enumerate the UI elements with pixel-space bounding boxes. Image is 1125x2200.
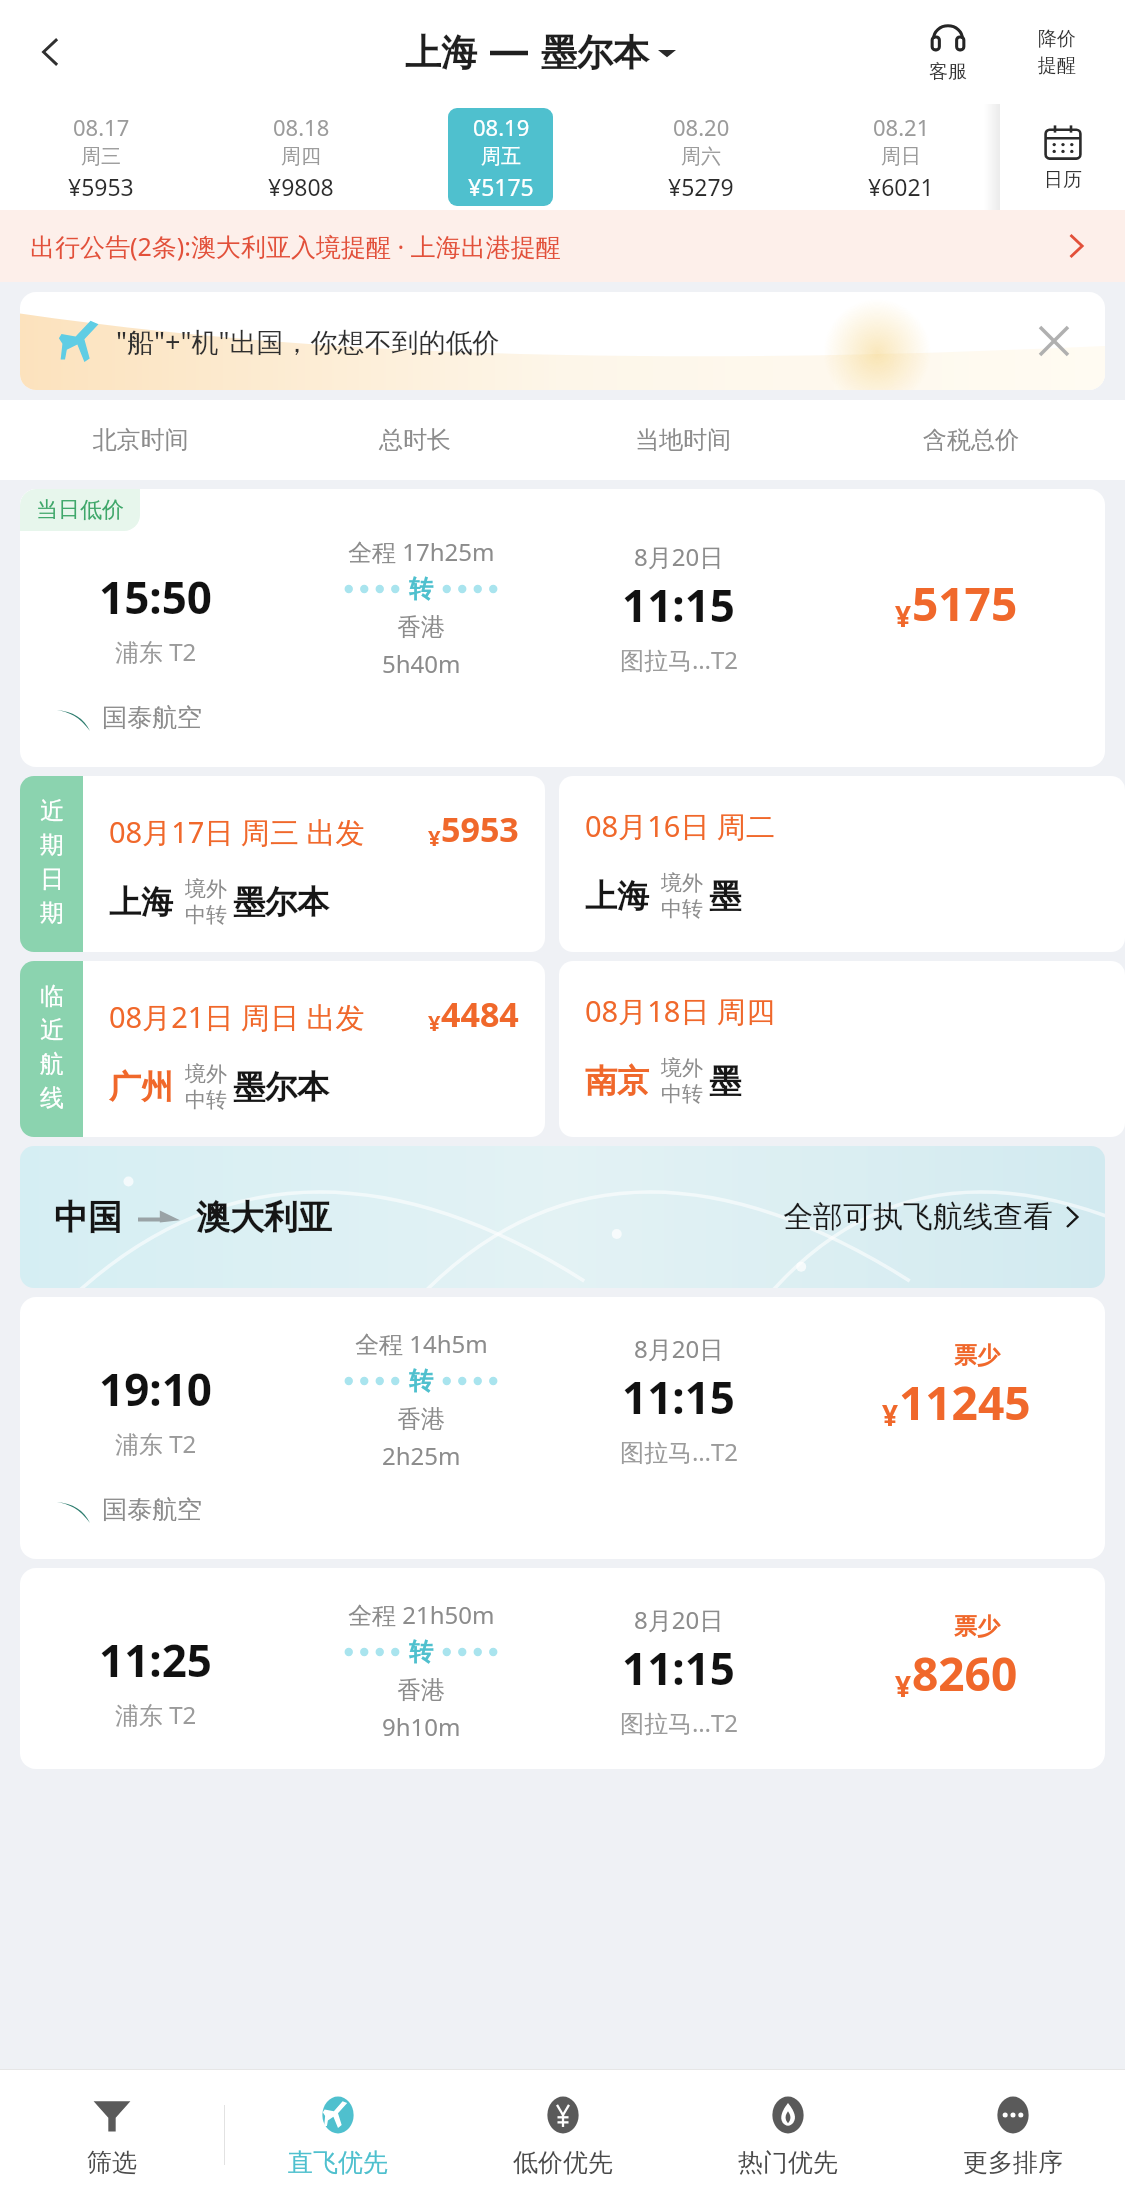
staticText: 墨尔本 (233, 1067, 329, 1107)
staticText: 2h25m (382, 1439, 461, 1472)
staticText: 08月16日 周二 (585, 806, 775, 846)
staticText: 浦东 T2 (115, 1698, 197, 1731)
button[interactable]: 降价 (1003, 27, 1111, 78)
button[interactable]: 08月18日 周四 (559, 961, 1125, 1137)
staticText: 5175 (912, 572, 1018, 635)
staticText: 筛选 (87, 2147, 137, 2178)
staticText: ¥ (895, 1667, 912, 1705)
staticText: 转 (409, 574, 433, 604)
staticText: 国泰航空 (102, 702, 202, 733)
button[interactable]: 11:25 (20, 1568, 1105, 1769)
staticText: 5953 (441, 806, 519, 852)
button[interactable]: 更多排序 (900, 2070, 1125, 2200)
button[interactable]: 临 (20, 961, 83, 1137)
staticText: 周三 (81, 144, 121, 169)
staticText: 周五 (481, 144, 521, 169)
staticText: ¥ (428, 822, 441, 852)
staticText: 广州 (109, 1067, 173, 1107)
staticText: 南京 (585, 1061, 649, 1101)
staticText: 直飞优先 (288, 2147, 388, 2178)
staticText: 转 (409, 1366, 433, 1396)
button[interactable]: 筛选 (0, 2070, 224, 2200)
staticText: 08.19 (473, 112, 530, 142)
button[interactable]: 低价优先 (450, 2070, 675, 2200)
staticText: 临 (40, 981, 64, 1011)
staticText: 中国 (54, 1196, 122, 1239)
staticText: 11245 (899, 1371, 1031, 1434)
staticText: ¥ (895, 597, 912, 635)
button[interactable]: 直飞优先 (225, 2070, 450, 2200)
staticText: 8月20日 (634, 540, 724, 573)
staticText: 日历 (1044, 168, 1082, 192)
button[interactable]: Back (20, 21, 82, 83)
staticText: 境外 (185, 1061, 227, 1087)
button[interactable]: 当日低价 (20, 489, 1105, 767)
staticText: 日 (40, 864, 64, 894)
staticText: 15:50 (99, 567, 213, 627)
button[interactable]: 08月17日 周三 出发 (83, 776, 545, 952)
staticText: ¥ (882, 1396, 899, 1434)
staticText: 08.18 (273, 112, 330, 142)
staticText: ¥5279 (668, 171, 734, 202)
staticText: 降价 (1038, 27, 1076, 51)
staticText: 近 (40, 796, 64, 826)
staticText: 墨 (709, 876, 741, 916)
staticText: 周六 (681, 144, 721, 169)
staticText: 上海 (109, 882, 173, 922)
staticText: 08月17日 周三 出发 (109, 812, 365, 852)
button[interactable]: 上海 (405, 30, 676, 75)
button[interactable]: 热门优先 (675, 2070, 900, 2200)
staticText: 墨尔本 (233, 882, 329, 922)
staticText: 含税总价 (817, 425, 1125, 455)
staticText: 全程 17h25m (348, 535, 495, 568)
staticText: 9h10m (382, 1710, 461, 1743)
button[interactable]: 中国 (20, 1146, 1105, 1288)
staticText: 08.21 (873, 112, 930, 142)
staticText: 香港 (397, 1675, 445, 1705)
staticText: 出行公告(2条):澳大利亚入境提醒 · 上海出港提醒 (30, 229, 561, 263)
staticText: 浦东 T2 (115, 635, 197, 668)
staticText: 低价优先 (513, 2147, 613, 2178)
staticText: 当地时间 (549, 425, 817, 455)
button[interactable]: 客服 (893, 20, 1003, 84)
staticText: 票少 (954, 1341, 1000, 1370)
staticText: 11:15 (622, 575, 736, 635)
button[interactable]: 08月16日 周二 (559, 776, 1125, 952)
button[interactable]: 出行公告(2条):澳大利亚入境提醒 · 上海出港提醒 (0, 210, 1125, 282)
button[interactable]: 08.18 (200, 104, 400, 210)
staticText: 浦东 T2 (115, 1427, 197, 1460)
button[interactable]: 近 (20, 776, 83, 952)
staticText: 近 (40, 1015, 64, 1045)
staticText: ¥ (428, 1007, 441, 1037)
staticText: ¥5175 (468, 171, 534, 202)
staticText: 08月18日 周四 (585, 991, 775, 1031)
button[interactable]: 关闭 (1029, 316, 1079, 366)
button[interactable]: 08.17 (0, 104, 200, 210)
staticText: 国泰航空 (102, 1494, 202, 1525)
staticText: 期 (40, 898, 64, 928)
staticText: 境外 (185, 876, 227, 902)
staticText: 香港 (397, 612, 445, 642)
button[interactable]: 08.19 (400, 104, 600, 210)
staticText: 转 (409, 1637, 433, 1667)
staticText: ¥5953 (68, 171, 134, 202)
staticText: 线 (40, 1083, 64, 1113)
staticText: 澳大利亚 (196, 1196, 332, 1239)
staticText: 周日 (881, 144, 921, 169)
staticText: 图拉马…T2 (620, 1435, 739, 1468)
staticText: 境外 (661, 870, 703, 896)
button[interactable]: 08.20 (600, 104, 800, 210)
button[interactable]: 08.21 (800, 104, 1000, 210)
staticText: 图拉马…T2 (620, 1706, 739, 1739)
staticText: 中转 (661, 896, 703, 922)
staticText: 5h40m (382, 647, 461, 680)
staticText: 8月20日 (634, 1332, 724, 1365)
button[interactable]: "船"+"机"出国，你想不到的低价 (20, 292, 1105, 390)
button[interactable]: 08月21日 周日 出发 (83, 961, 545, 1137)
staticText: 周四 (281, 144, 321, 169)
button[interactable]: 19:10 (20, 1297, 1105, 1559)
staticText: 北京时间 (0, 425, 281, 455)
staticText: 客服 (929, 60, 967, 84)
staticText: 08.20 (673, 112, 730, 142)
button[interactable]: 日历 (1000, 104, 1125, 210)
